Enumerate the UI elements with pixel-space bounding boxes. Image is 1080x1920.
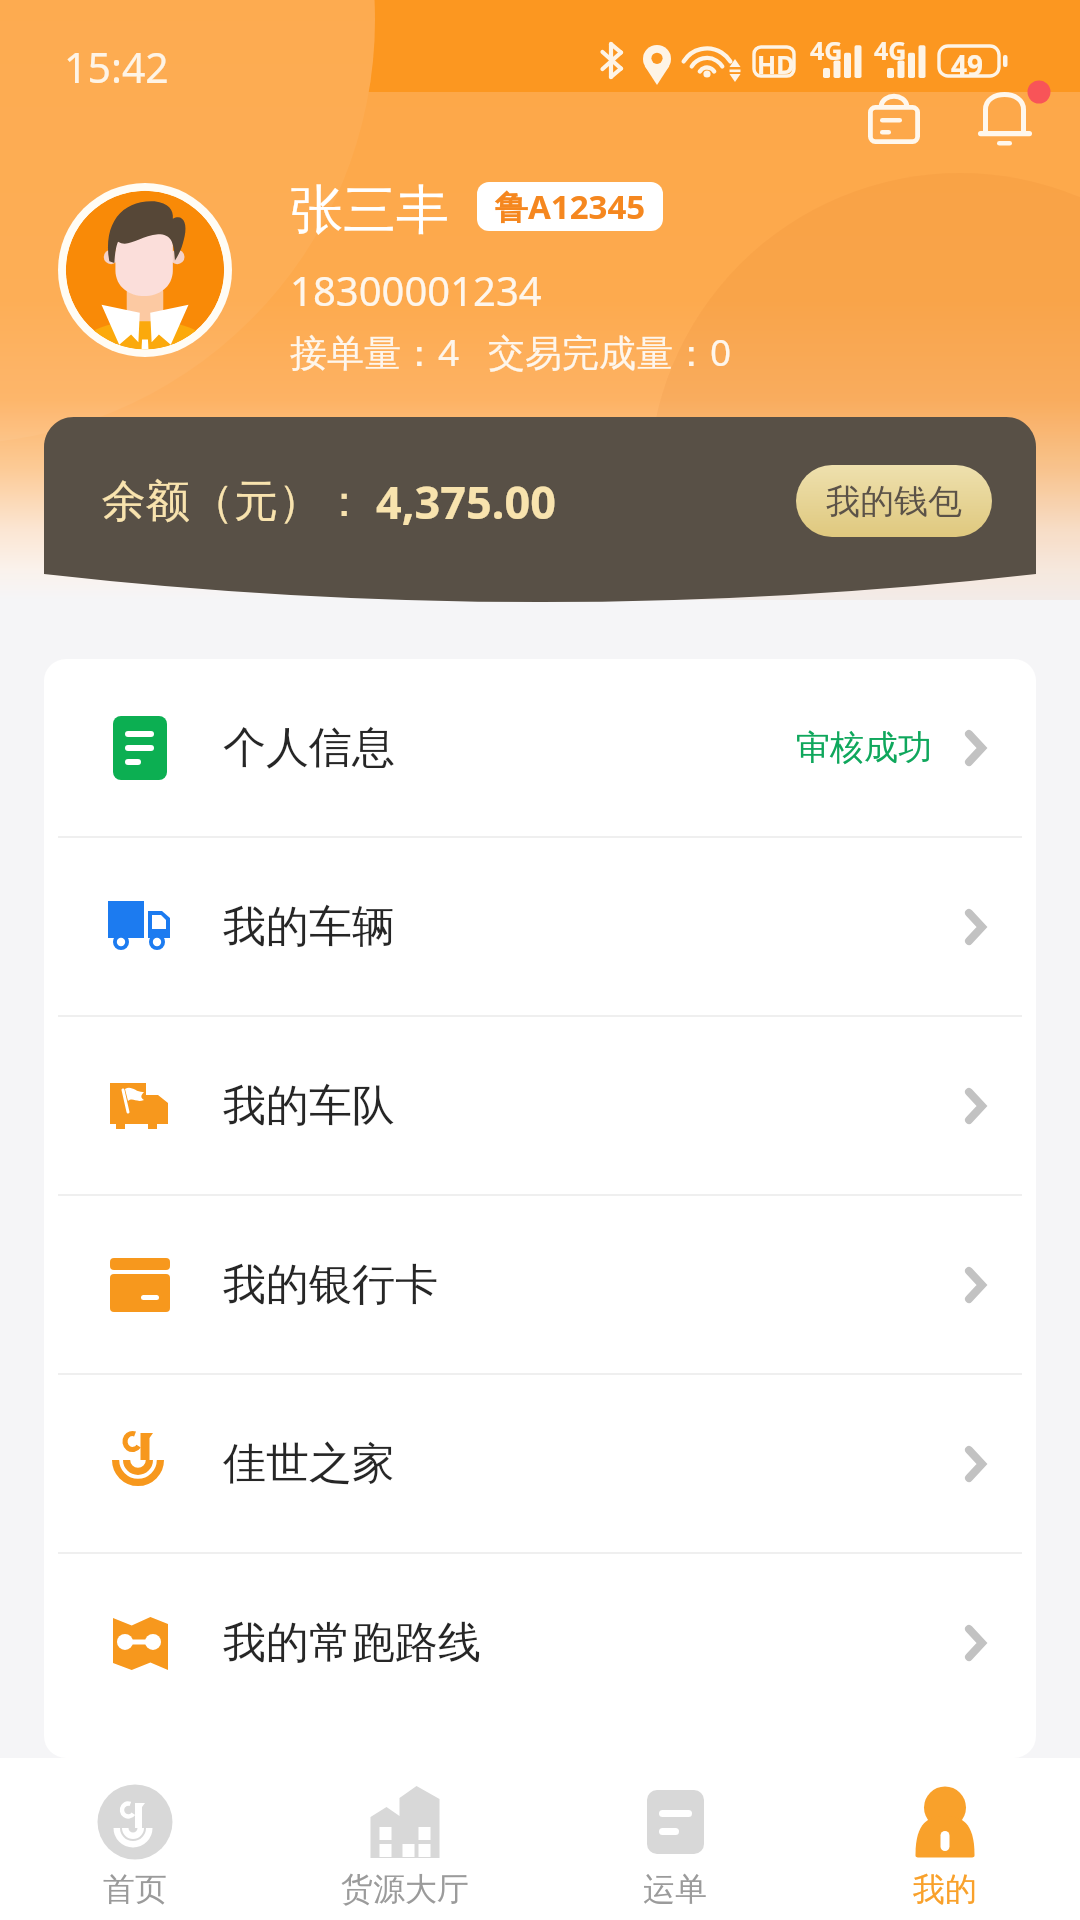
staticText: 49 — [951, 46, 984, 84]
staticText: 18300001234 — [290, 263, 542, 317]
staticText: 我的常跑路线 — [223, 1616, 481, 1670]
button[interactable]: 我的银行卡 — [44, 1196, 1036, 1373]
button[interactable]: 我的常跑路线 — [44, 1554, 1036, 1731]
staticText: 鲁A12345 — [495, 184, 646, 229]
button[interactable]: 我的钱包 — [796, 465, 992, 537]
staticText: 余额（元）： — [102, 474, 366, 529]
staticText: 我的银行卡 — [223, 1258, 438, 1312]
staticText: 个人信息 — [223, 721, 395, 775]
button[interactable]: 余额（元）： — [44, 417, 1036, 602]
button[interactable]: 首页 — [0, 1758, 270, 1920]
staticText: 我的车辆 — [223, 900, 395, 954]
button[interactable]: 运单 — [540, 1758, 810, 1920]
button[interactable]: 个人信息 — [44, 659, 1036, 836]
staticText: 首页 — [103, 1869, 167, 1909]
staticText: HD — [757, 47, 795, 81]
staticText: 我的车队 — [223, 1079, 395, 1133]
button[interactable]: 我的 — [810, 1758, 1080, 1920]
staticText: 审核成功 — [796, 726, 932, 769]
staticText: 4,375.00 — [376, 471, 556, 532]
button[interactable]: 货源大厅 — [270, 1758, 540, 1920]
button[interactable]: 我的车辆 — [44, 838, 1036, 1015]
staticText: 运单 — [643, 1869, 707, 1909]
staticText: 我的 — [913, 1869, 977, 1909]
staticText: 15:42 — [64, 39, 169, 95]
staticText: 佳世之家 — [223, 1437, 395, 1491]
button[interactable]: 我的车队 — [44, 1017, 1036, 1194]
staticText: 4G — [874, 33, 907, 67]
staticText: 货源大厅 — [341, 1869, 469, 1909]
staticText: 接单量：4 交易完成量：0 — [290, 326, 732, 377]
staticText: 张三丰 — [290, 177, 449, 244]
staticText: 我的钱包 — [826, 480, 962, 523]
button[interactable]: 佳世之家 — [44, 1375, 1036, 1552]
button[interactable]: Notifications — [962, 80, 1054, 164]
staticText: 4G — [810, 33, 843, 67]
button[interactable]: Orders — [848, 80, 940, 164]
